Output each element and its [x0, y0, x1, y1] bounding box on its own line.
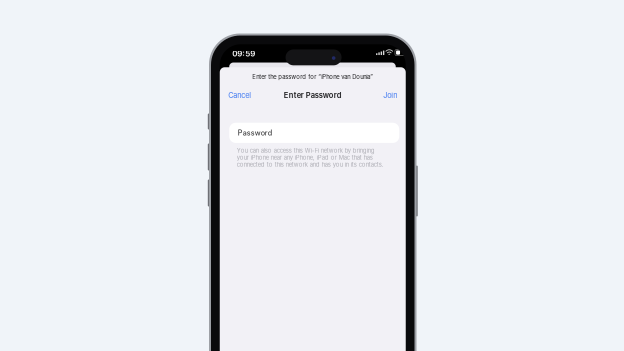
staticText: Enter Password	[284, 91, 342, 100]
staticText: Enter the password for “iPhone van Douni…	[252, 73, 373, 80]
staticText: Cancel	[228, 91, 251, 100]
staticText: Join	[383, 91, 397, 100]
staticText: Password	[238, 128, 272, 137]
button[interactable]: Cancel	[228, 90, 251, 101]
button[interactable]: Join	[383, 90, 397, 101]
staticText: You can also access this Wi-Fi network b…	[237, 147, 375, 154]
staticText: your iPhone near any iPhone, iPad or Mac…	[237, 154, 373, 161]
staticText: connected to this network and has you in…	[237, 161, 384, 168]
staticText: 09:59	[232, 49, 255, 59]
